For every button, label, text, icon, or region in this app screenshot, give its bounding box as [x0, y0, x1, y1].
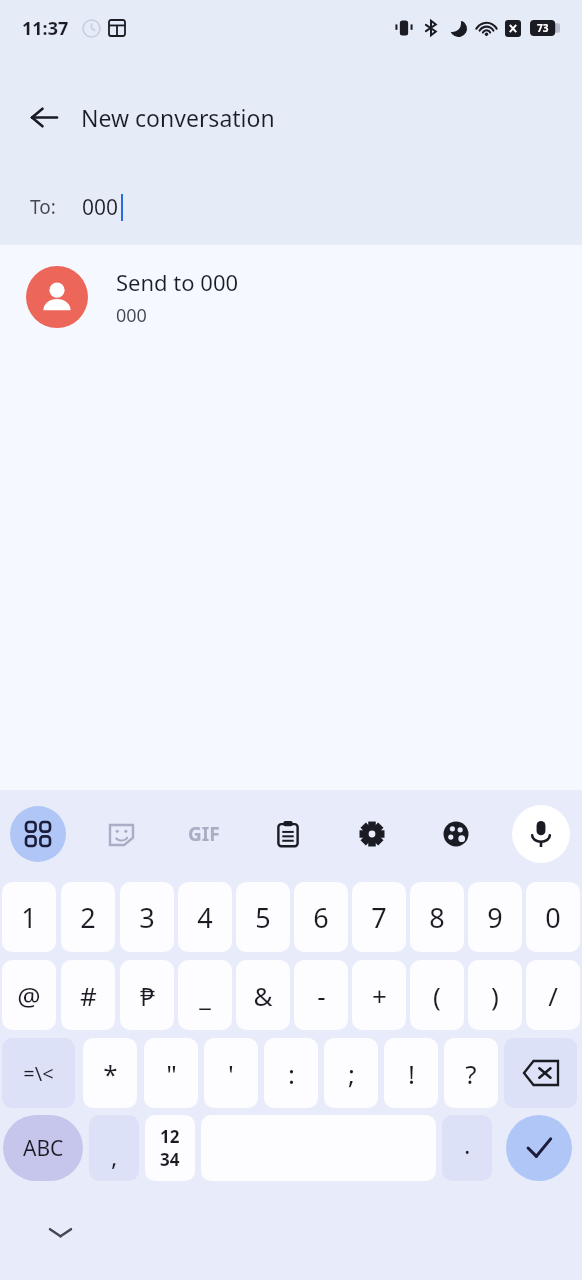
button[interactable]: ,: [89, 1115, 139, 1181]
staticText: To:: [30, 194, 56, 220]
staticText: ): [491, 978, 499, 1013]
button[interactable]: (: [410, 960, 464, 1030]
staticText: 73: [537, 21, 549, 35]
staticText: 34: [160, 1148, 180, 1171]
staticText: -: [317, 978, 326, 1013]
button[interactable]: !: [384, 1038, 438, 1108]
button[interactable]: 2: [61, 882, 115, 952]
button[interactable]: ): [468, 960, 522, 1030]
button[interactable]: +: [352, 960, 406, 1030]
staticText: 12: [160, 1125, 180, 1148]
staticText: New conversation: [81, 102, 275, 133]
button[interactable]: ABC: [3, 1115, 83, 1181]
button[interactable]: .: [442, 1115, 492, 1181]
staticText: ?: [465, 1056, 477, 1091]
staticText: =\<: [23, 1060, 54, 1087]
staticText: #: [80, 978, 97, 1013]
button[interactable]: @: [2, 960, 56, 1030]
button[interactable]: *: [83, 1038, 137, 1108]
button[interactable]: 4: [178, 882, 232, 952]
button[interactable]: 7: [352, 882, 406, 952]
staticText: ,: [111, 1140, 118, 1173]
button[interactable]: /: [526, 960, 580, 1030]
staticText: 4: [197, 899, 213, 936]
staticText: @: [17, 978, 41, 1013]
staticText: ;: [348, 1056, 355, 1091]
button[interactable]: Stickers: [93, 806, 149, 862]
button[interactable]: Back: [18, 91, 70, 143]
staticText: /: [548, 978, 558, 1013]
button[interactable]: 0: [526, 882, 580, 952]
button[interactable]: Backspace: [504, 1038, 577, 1108]
button[interactable]: 5: [236, 882, 290, 952]
button[interactable]: 6: [294, 882, 348, 952]
button[interactable]: Clipboard: [260, 806, 316, 862]
staticText: 000: [116, 303, 147, 328]
button[interactable]: Enter: [506, 1115, 572, 1181]
staticText: ': [228, 1056, 234, 1091]
staticText: GIF: [188, 821, 220, 847]
button[interactable]: &: [236, 960, 290, 1030]
staticText: ABC: [23, 1134, 64, 1163]
button[interactable]: ₱: [120, 960, 174, 1030]
staticText: 0: [545, 899, 561, 936]
button[interactable]: Numbers: [145, 1115, 195, 1181]
staticText: &: [253, 978, 273, 1013]
button[interactable]: GIF: [176, 806, 232, 862]
button[interactable]: ": [144, 1038, 198, 1108]
staticText: (: [433, 978, 441, 1013]
staticText: ": [166, 1056, 177, 1091]
staticText: +: [372, 978, 387, 1013]
staticText: 5: [255, 899, 271, 936]
button[interactable]: ;: [324, 1038, 378, 1108]
staticText: _: [199, 978, 211, 1013]
button[interactable]: 8: [410, 882, 464, 952]
staticText: .: [464, 1128, 471, 1161]
staticText: Send to 000: [116, 267, 239, 297]
button[interactable]: Settings: [344, 806, 400, 862]
button[interactable]: 3: [120, 882, 174, 952]
button[interactable]: 1: [2, 882, 56, 952]
button[interactable]: Send to 000: [0, 245, 582, 349]
button[interactable]: 9: [468, 882, 522, 952]
other: Backspace: [524, 1061, 558, 1085]
button[interactable]: Themes: [428, 806, 484, 862]
button[interactable]: Hide keyboard: [36, 1208, 84, 1256]
staticText: !: [408, 1056, 415, 1091]
staticText: ₱: [140, 978, 155, 1013]
staticText: 2: [80, 899, 96, 936]
button[interactable]: Voice input: [512, 805, 570, 863]
staticText: 7: [371, 899, 387, 936]
button[interactable]: ?: [444, 1038, 498, 1108]
staticText: 9: [487, 899, 503, 936]
button[interactable]: #: [61, 960, 115, 1030]
staticText: 8: [429, 899, 445, 936]
button[interactable]: Toolbox: [10, 806, 66, 862]
staticText: 6: [313, 899, 329, 936]
button[interactable]: _: [178, 960, 232, 1030]
staticText: 11:37: [22, 16, 69, 41]
staticText: 1: [21, 899, 37, 936]
staticText: 000: [82, 193, 119, 222]
button[interactable]: =\<: [2, 1038, 75, 1108]
button[interactable]: :: [264, 1038, 318, 1108]
staticText: 3: [139, 899, 155, 936]
button[interactable]: ': [204, 1038, 258, 1108]
staticText: *: [103, 1056, 118, 1091]
staticText: :: [288, 1056, 295, 1091]
button[interactable]: -: [294, 960, 348, 1030]
